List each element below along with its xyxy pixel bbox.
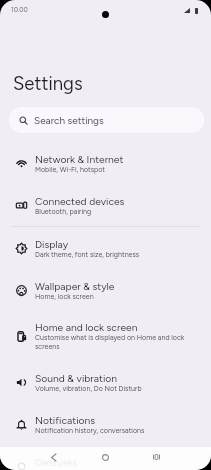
staticText: Network & Internet <box>35 153 124 165</box>
staticText: Connected devices <box>35 195 125 207</box>
staticText: Display <box>35 238 69 250</box>
staticText: Mobile, Wi-Fi, hotspot <box>35 165 106 174</box>
button[interactable]: Back <box>45 449 61 465</box>
button[interactable]: Recent apps <box>148 449 164 465</box>
staticText: Wallpaper & style <box>35 280 115 292</box>
button[interactable]: Sound & vibration <box>0 361 211 403</box>
staticText: Bluetooth, pairing <box>35 207 92 216</box>
button[interactable]: Home <box>97 449 113 465</box>
button[interactable]: Home and lock screen <box>0 311 211 361</box>
staticText: Home, lock screen <box>35 292 94 301</box>
staticText: Notification history, conversations <box>35 426 145 435</box>
button[interactable]: Connected devices <box>0 184 211 226</box>
staticText: Customise what is displayed on Home and … <box>35 333 197 351</box>
staticText: Home and lock screen <box>35 321 138 333</box>
button[interactable]: Notifications <box>0 403 211 445</box>
staticText: Settings <box>13 72 83 94</box>
button[interactable]: Search settings <box>9 107 204 133</box>
staticText: Gestures <box>35 456 77 468</box>
staticText: 10.00 <box>11 6 28 14</box>
button[interactable]: Display <box>0 227 211 269</box>
button[interactable]: Gestures <box>0 445 211 470</box>
button[interactable]: Wallpaper & style <box>0 269 211 311</box>
button[interactable]: Network & Internet <box>0 142 211 184</box>
staticText: Notifications <box>35 414 96 426</box>
staticText: Search settings <box>34 114 104 126</box>
staticText: Sound & vibration <box>35 372 118 384</box>
staticText: Dark theme, font size, brightness <box>35 250 140 259</box>
staticText: Volume, vibration, Do Not Disturb <box>35 384 142 393</box>
